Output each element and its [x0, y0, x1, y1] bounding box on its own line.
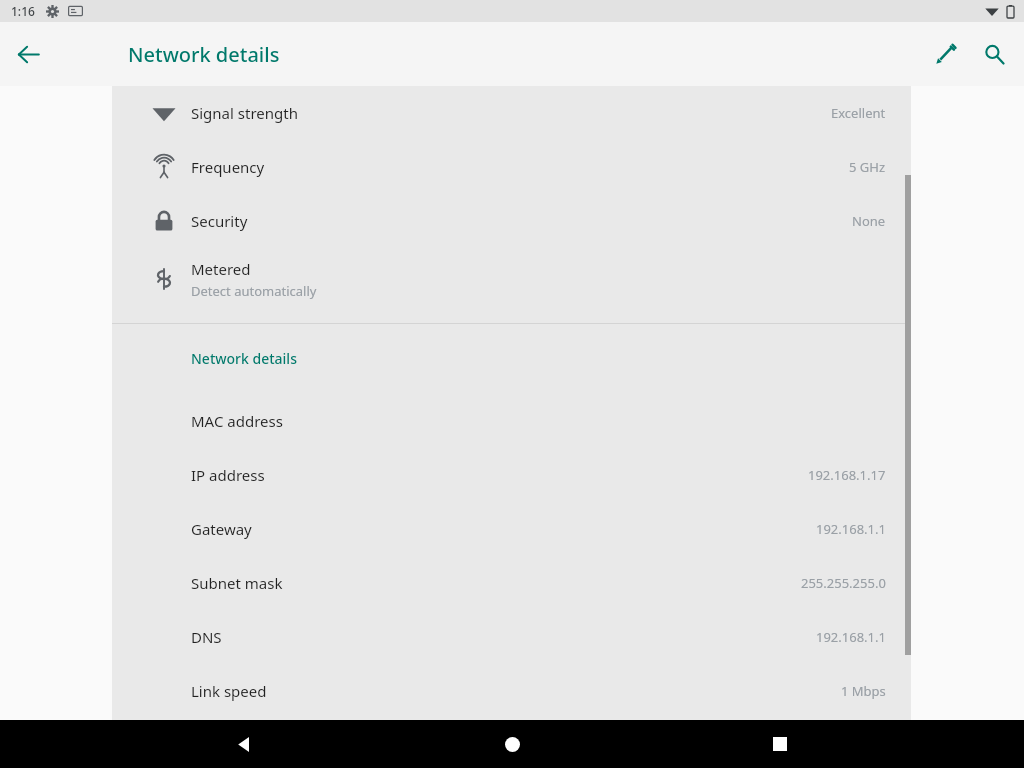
- button[interactable]: Subnet mask: [112, 556, 911, 610]
- button[interactable]: Back: [8, 34, 48, 74]
- staticText: 5 GHz: [849, 158, 886, 176]
- staticText: Frequency: [191, 157, 265, 177]
- staticText: Network details: [191, 349, 297, 368]
- staticText: None: [852, 212, 886, 230]
- staticText: 192.168.1.17: [808, 466, 886, 484]
- button[interactable]: MAC address: [112, 394, 911, 448]
- staticText: 255.255.255.0: [801, 574, 886, 592]
- staticText: IP address: [191, 465, 808, 485]
- button[interactable]: Link speed: [112, 664, 911, 718]
- button[interactable]: Recents: [756, 720, 804, 768]
- staticText: 1:16: [11, 3, 35, 19]
- staticText: DNS: [191, 627, 816, 647]
- staticText: Subnet mask: [191, 573, 801, 593]
- button[interactable]: Edit: [922, 30, 970, 78]
- button[interactable]: Home: [488, 720, 536, 768]
- button[interactable]: IP address: [112, 448, 911, 502]
- button[interactable]: DNS: [112, 610, 911, 664]
- staticText: 1 Mbps: [841, 682, 886, 700]
- button[interactable]: Security: [112, 194, 911, 248]
- staticText: Security: [191, 211, 248, 231]
- staticText: Gateway: [191, 519, 816, 539]
- button[interactable]: Gateway: [112, 502, 911, 556]
- staticText: 192.168.1.1: [816, 520, 886, 538]
- staticText: Link speed: [191, 681, 841, 701]
- button[interactable]: Frequency: [112, 140, 911, 194]
- staticText: MAC address: [191, 411, 886, 431]
- staticText: Signal strength: [191, 103, 298, 123]
- button[interactable]: Back: [220, 720, 268, 768]
- button[interactable]: Signal strength: [112, 86, 911, 140]
- staticText: Metered: [191, 259, 251, 279]
- button[interactable]: Search: [970, 30, 1018, 78]
- staticText: Excellent: [831, 104, 886, 122]
- staticText: Detect automatically: [191, 282, 317, 300]
- button[interactable]: Metered: [112, 248, 911, 310]
- staticText: Network details: [128, 41, 280, 68]
- staticText: 192.168.1.1: [816, 628, 886, 646]
